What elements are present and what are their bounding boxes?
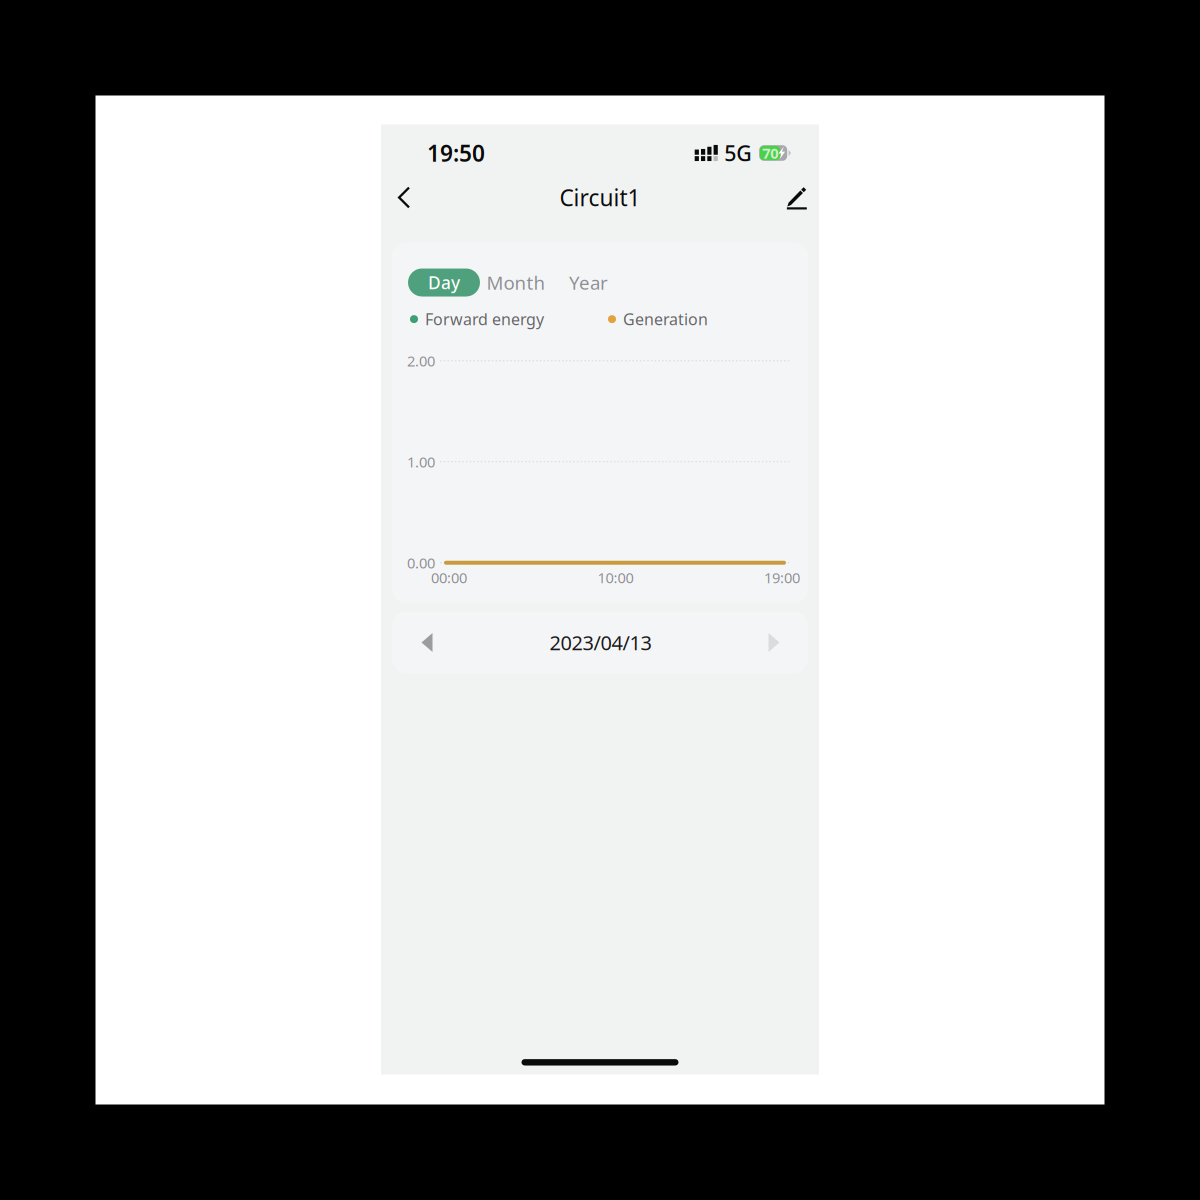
staticText: 10:00 [597, 568, 633, 587]
staticText: 19:50 [427, 138, 485, 168]
button[interactable]: Year [552, 268, 625, 296]
staticText: Day [428, 271, 460, 294]
button[interactable]: Month [480, 268, 552, 296]
button[interactable]: Next day [752, 617, 796, 667]
staticText: 5G [724, 139, 752, 167]
staticText: 2.00 [407, 351, 435, 370]
staticText: Circuit1 [559, 182, 640, 212]
staticText: 0.00 [407, 553, 435, 572]
staticText: Month [486, 270, 545, 295]
staticText: 00:00 [431, 568, 467, 587]
staticText: 70 [762, 143, 778, 163]
button[interactable]: Back [382, 175, 426, 219]
button[interactable]: Previous day [405, 617, 449, 667]
staticText: Year [569, 270, 608, 295]
staticText: 1.00 [407, 452, 435, 471]
staticText: Generation [623, 308, 708, 330]
button[interactable]: Day [408, 268, 480, 296]
staticText: 19:00 [764, 568, 800, 587]
staticText: Forward energy [425, 308, 544, 330]
button[interactable]: Edit [775, 175, 819, 219]
staticText: 2023/04/13 [549, 629, 651, 656]
